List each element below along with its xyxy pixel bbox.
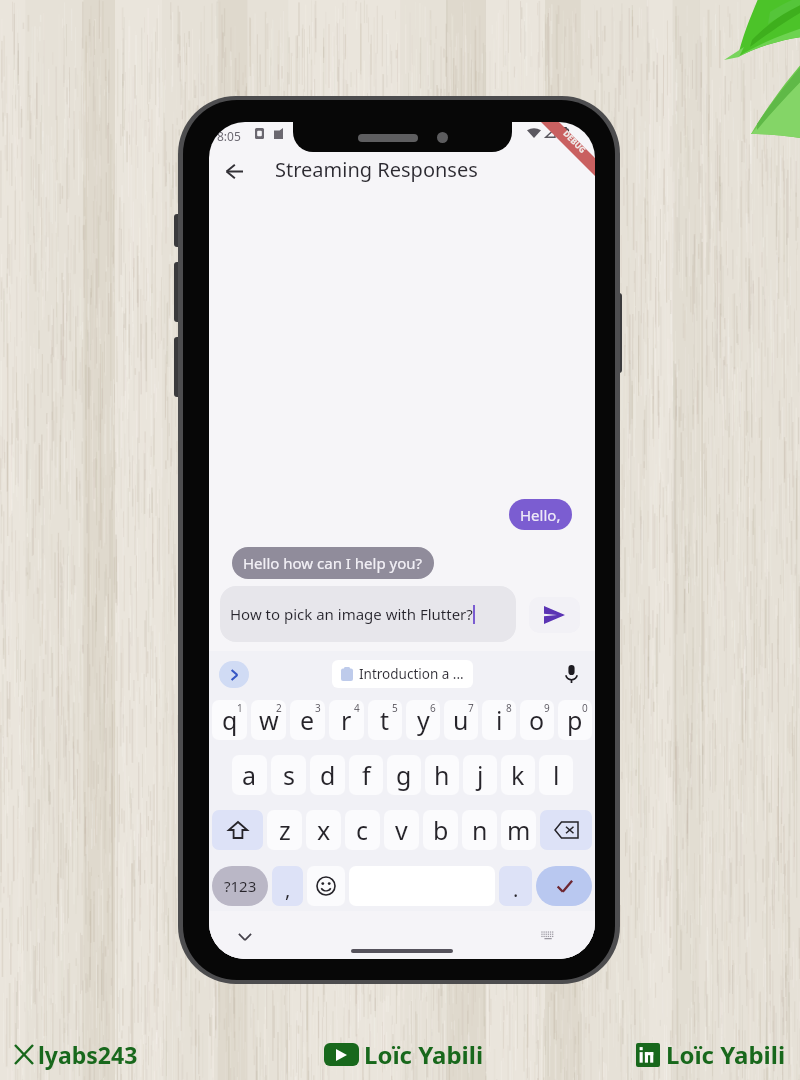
staticText: p (567, 703, 583, 737)
staticText: t (380, 703, 390, 737)
staticText: l (553, 758, 560, 792)
staticText: s (283, 758, 295, 792)
button[interactable] (307, 866, 345, 906)
button[interactable]: p (558, 700, 592, 740)
other: Hide keyboard (238, 933, 252, 941)
staticText: h (434, 758, 450, 792)
button[interactable]: Back (214, 151, 254, 191)
button[interactable]: n (462, 810, 497, 850)
staticText: Introduction a ... (359, 665, 464, 683)
staticText: c (356, 813, 369, 847)
button[interactable]: q (212, 700, 247, 740)
button[interactable]: c (345, 810, 380, 850)
button[interactable]: Send (529, 597, 580, 633)
button[interactable]: Hello how can I help you? (232, 547, 434, 579)
button[interactable] (540, 810, 592, 850)
staticText: Hello how can I help you? (243, 553, 423, 573)
staticText: ?123 (224, 876, 257, 896)
staticText: x (317, 813, 331, 847)
staticText: f (362, 758, 371, 792)
button[interactable]: u (444, 700, 478, 740)
staticText: n (472, 813, 488, 847)
staticText: e (300, 703, 315, 737)
button[interactable]: t (368, 700, 402, 740)
button[interactable]: Voice input (557, 660, 585, 688)
staticText: j (477, 758, 484, 792)
staticText: 2 (276, 701, 282, 715)
button[interactable]: k (501, 755, 535, 795)
button[interactable]: ?123 (212, 866, 268, 906)
button[interactable] (212, 810, 263, 850)
button[interactable]: y (406, 700, 440, 740)
button[interactable]: , (272, 866, 303, 906)
button[interactable]: j (463, 755, 497, 795)
button[interactable]: w (251, 700, 286, 740)
staticText: lyabs243 (38, 1039, 138, 1070)
staticText: r (341, 703, 352, 737)
other: Keyboard settings (541, 931, 556, 942)
staticText: a (242, 758, 257, 792)
staticText: b (433, 813, 449, 847)
button[interactable]: f (349, 755, 383, 795)
staticText: 6 (430, 701, 436, 715)
button[interactable]: How to pick an image with Flutter? (220, 586, 516, 642)
staticText: DEBUG (561, 128, 589, 155)
staticText: Loïc Yabili (666, 1038, 786, 1071)
staticText: 1 (237, 701, 243, 715)
button[interactable]: a (232, 755, 267, 795)
staticText: 4 (354, 701, 360, 715)
staticText: . (513, 876, 519, 903)
button[interactable]: Enter (536, 866, 592, 906)
button[interactable]: x (306, 810, 341, 850)
staticText: w (259, 703, 279, 737)
staticText: How to pick an image with Flutter? (230, 604, 473, 624)
staticText: z (279, 813, 291, 847)
staticText: 3 (315, 701, 321, 715)
staticText: , (285, 876, 291, 903)
staticText: m (507, 813, 531, 847)
button[interactable]: m (501, 810, 536, 850)
button[interactable]: b (423, 810, 458, 850)
staticText: Streaming Responses (275, 156, 478, 183)
staticText: 7 (468, 701, 474, 715)
staticText: Hello, (520, 505, 561, 525)
staticText: Loïc Yabili (364, 1038, 484, 1071)
staticText: 0 (582, 701, 588, 715)
staticText: o (529, 703, 545, 737)
staticText: g (396, 758, 412, 792)
button[interactable]: o (520, 700, 554, 740)
staticText: 8 (506, 701, 512, 715)
staticText: u (453, 703, 469, 737)
button[interactable]: r (329, 700, 364, 740)
staticText: k (511, 758, 525, 792)
staticText: i (496, 703, 503, 737)
staticText: 9 (544, 701, 550, 715)
button[interactable]: Introduction a ... (332, 660, 473, 688)
button[interactable]: e (290, 700, 325, 740)
button[interactable]: v (384, 810, 419, 850)
staticText: 5 (392, 701, 398, 715)
button[interactable]: d (310, 755, 345, 795)
button[interactable]: . (499, 866, 532, 906)
button[interactable]: g (387, 755, 421, 795)
button[interactable]: z (267, 810, 302, 850)
button[interactable]: l (539, 755, 573, 795)
staticText: q (222, 703, 238, 737)
button[interactable]: Hello, (509, 499, 572, 530)
button[interactable]: s (271, 755, 306, 795)
button[interactable]: Expand toolbar (219, 661, 249, 688)
staticText: 8:05 (217, 128, 241, 144)
button[interactable]: i (482, 700, 516, 740)
staticText: d (320, 758, 336, 792)
staticText: y (417, 703, 430, 737)
staticText: v (395, 813, 408, 847)
button[interactable]: h (425, 755, 459, 795)
